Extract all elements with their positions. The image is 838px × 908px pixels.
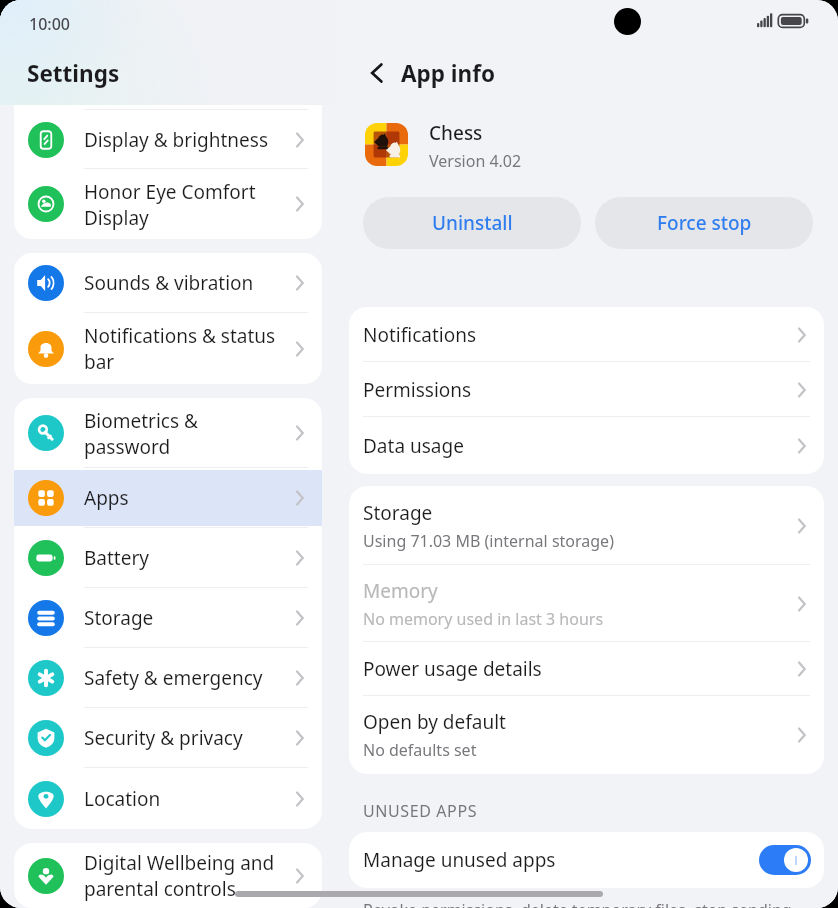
staticText: Battery — [84, 545, 149, 571]
staticText: Open by default — [363, 709, 506, 735]
staticText: Permissions — [363, 377, 472, 403]
staticText: Memory — [363, 578, 438, 604]
button[interactable]: Notifications & status bar — [14, 313, 322, 384]
staticText: No defaults set — [363, 739, 477, 761]
staticText: Apps — [84, 485, 129, 511]
button[interactable]: Location — [14, 768, 322, 829]
staticText: Biometrics & password — [84, 408, 198, 459]
staticText: Security & privacy — [84, 725, 243, 751]
button[interactable]: Open by default — [349, 696, 824, 774]
button[interactable]: Back — [363, 59, 391, 87]
staticText: Storage — [84, 605, 154, 631]
staticText: Version 4.02 — [429, 150, 522, 168]
button[interactable]: Digital Wellbeing and parental controls — [14, 843, 322, 908]
staticText: Revoke permissions, delete temporary fil… — [363, 899, 792, 908]
staticText: Settings — [27, 58, 120, 89]
button[interactable]: Apps — [14, 468, 322, 528]
staticText: Notifications & status bar — [84, 323, 276, 374]
button[interactable]: Notifications — [349, 307, 824, 362]
staticText: Digital Wellbeing and parental controls — [84, 850, 275, 901]
staticText: Notifications — [363, 322, 477, 348]
button[interactable]: Battery — [14, 528, 322, 588]
button[interactable]: Memory — [349, 565, 824, 642]
button[interactable]: Force stop — [595, 197, 813, 249]
staticText: Location — [84, 786, 161, 812]
button[interactable]: Storage — [14, 588, 322, 648]
button[interactable]: Storage — [349, 486, 824, 565]
staticText: Storage — [363, 500, 433, 526]
staticText: Power usage details — [363, 656, 542, 682]
staticText: App info — [401, 58, 495, 89]
button[interactable]: Power usage details — [349, 642, 824, 696]
button[interactable]: Permissions — [349, 362, 824, 417]
staticText: 10:00 — [29, 13, 70, 35]
button[interactable]: Data usage — [349, 417, 824, 474]
button[interactable]: Honor Eye Comfort Display — [14, 169, 322, 239]
staticText: Chess — [429, 120, 483, 146]
staticText: No memory used in last 3 hours — [363, 608, 604, 630]
button[interactable]: Uninstall — [363, 197, 581, 249]
button[interactable]: Biometrics & password — [14, 398, 322, 468]
button[interactable]: Security & privacy — [14, 708, 322, 768]
staticText: Data usage — [363, 433, 464, 459]
staticText: Manage unused apps — [363, 847, 556, 873]
staticText: Honor Eye Comfort Display — [84, 179, 256, 230]
button[interactable]: Manage unused apps — [349, 832, 824, 888]
staticText: Sounds & vibration — [84, 270, 254, 296]
button[interactable]: Safety & emergency — [14, 648, 322, 708]
staticText: Using 71.03 MB (internal storage) — [363, 530, 614, 552]
staticText: Force stop — [657, 210, 752, 236]
staticText: Uninstall — [432, 210, 513, 236]
button[interactable]: Sounds & vibration — [14, 253, 322, 313]
staticText: UNUSED APPS — [363, 800, 478, 822]
button[interactable]: Display & brightness — [14, 110, 322, 169]
staticText: Display & brightness — [84, 127, 268, 153]
staticText: Safety & emergency — [84, 665, 263, 691]
